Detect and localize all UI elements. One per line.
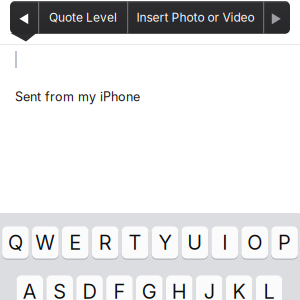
staticText: A (23, 279, 37, 300)
button[interactable]: D (76, 275, 103, 300)
staticText: I (222, 230, 227, 255)
button[interactable]: G (136, 275, 163, 300)
button[interactable]: K (226, 275, 252, 300)
staticText: W (35, 230, 55, 255)
staticText: Quote Level (49, 10, 117, 25)
staticText: U (187, 230, 202, 255)
staticText: P (278, 230, 291, 255)
button[interactable]: S (46, 275, 73, 300)
button[interactable]: Insert Photo or Video (128, 1, 263, 34)
staticText: Sent from my iPhone (15, 89, 140, 104)
button[interactable]: Quote Level (39, 1, 127, 34)
button[interactable]: H (166, 275, 193, 300)
staticText: K (232, 279, 245, 300)
button[interactable]: Next (264, 1, 290, 34)
button[interactable]: Q (2, 226, 29, 260)
button[interactable]: P (271, 226, 298, 260)
button[interactable]: Y (152, 226, 178, 260)
button[interactable]: O (241, 226, 268, 260)
button[interactable]: R (92, 226, 118, 260)
button[interactable]: Previous (10, 1, 38, 34)
staticText: G (142, 279, 157, 300)
button[interactable]: I (211, 226, 238, 260)
button[interactable]: W (32, 226, 59, 260)
staticText: R (99, 230, 112, 255)
button[interactable]: U (181, 226, 208, 260)
staticText: Q (8, 230, 23, 255)
button[interactable]: A (16, 275, 43, 300)
button[interactable]: E (62, 226, 89, 260)
staticText: D (82, 279, 96, 300)
staticText: L (263, 279, 274, 300)
staticText: Y (158, 230, 171, 255)
staticText: H (172, 279, 187, 300)
button[interactable]: J (196, 275, 222, 300)
staticText: E (69, 230, 81, 255)
button[interactable]: T (122, 226, 148, 260)
staticText: J (204, 279, 215, 300)
button[interactable]: F (106, 275, 133, 300)
button[interactable]: L (256, 275, 282, 300)
staticText: S (53, 279, 66, 300)
staticText: T (128, 230, 141, 255)
staticText: O (247, 230, 262, 255)
staticText: F (113, 279, 125, 300)
staticText: Insert Photo or Video (136, 10, 254, 25)
